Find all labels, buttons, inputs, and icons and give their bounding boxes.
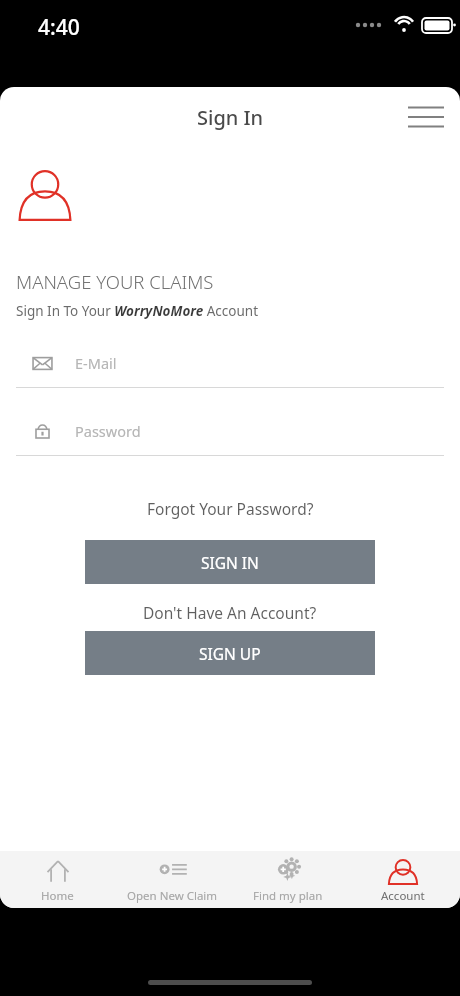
staticText: Sign In To Your WorryNoMore Account bbox=[16, 302, 259, 320]
button[interactable]: SIGN UP bbox=[85, 631, 375, 675]
staticText: Don't Have An Account? bbox=[143, 602, 317, 623]
button[interactable]: Account bbox=[345, 851, 460, 908]
staticText: Account bbox=[381, 888, 425, 904]
button[interactable]: Forgot Your Password? bbox=[0, 498, 460, 519]
staticText: Sign In bbox=[197, 104, 264, 131]
button[interactable]: Find my plan bbox=[230, 851, 345, 908]
staticText: 4:40 bbox=[38, 13, 80, 42]
staticText: SIGN UP bbox=[199, 643, 261, 664]
button[interactable]: Home bbox=[0, 851, 115, 908]
button[interactable]: E-Mail bbox=[16, 346, 444, 388]
button[interactable]: Menu bbox=[404, 95, 448, 139]
staticText: MANAGE YOUR CLAIMS bbox=[16, 269, 214, 294]
staticText: Password bbox=[75, 421, 141, 441]
staticText: Home bbox=[41, 888, 74, 904]
staticText: Forgot Your Password? bbox=[147, 498, 314, 519]
button[interactable]: Don't Have An Account? bbox=[0, 602, 460, 623]
button[interactable]: SIGN IN bbox=[85, 540, 375, 584]
button[interactable]: Open New Claim bbox=[115, 851, 230, 908]
button[interactable]: Password bbox=[16, 414, 444, 456]
staticText: E-Mail bbox=[75, 353, 117, 373]
staticText: SIGN IN bbox=[201, 552, 259, 573]
staticText: Open New Claim bbox=[127, 888, 218, 904]
staticText: Find my plan bbox=[253, 888, 323, 904]
